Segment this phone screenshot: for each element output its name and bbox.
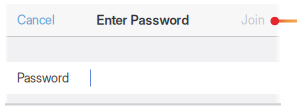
button[interactable]: Password	[5, 62, 277, 94]
button[interactable]: Join	[239, 4, 267, 36]
button[interactable]: Cancel	[15, 4, 57, 36]
staticText: Join	[241, 12, 265, 27]
staticText: Password	[17, 70, 69, 85]
staticText: Enter Password	[96, 12, 189, 28]
staticText: Cancel	[17, 12, 55, 27]
